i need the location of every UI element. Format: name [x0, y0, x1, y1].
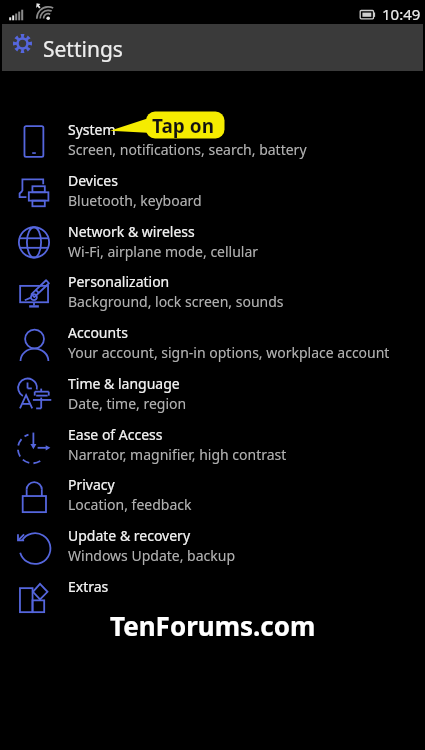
- staticText: Ease of Access: [68, 425, 163, 444]
- button[interactable]: Accounts: [0, 324, 425, 375]
- staticText: Accounts: [68, 323, 128, 342]
- button[interactable]: Network & wireless: [0, 223, 425, 274]
- staticText: Location, feedback: [68, 495, 192, 514]
- staticText: Time & language: [68, 374, 180, 393]
- button[interactable]: Devices: [0, 172, 425, 223]
- staticText: Date, time, region: [68, 394, 187, 413]
- button[interactable]: Ease of Access: [0, 426, 425, 477]
- staticText: Personalization: [68, 272, 170, 291]
- staticText: Bluetooth, keyboard: [68, 191, 202, 210]
- staticText: Your account, sign-in options, workplace…: [68, 343, 390, 362]
- button[interactable]: Update & recovery: [0, 527, 425, 578]
- staticText: Narrator, magnifier, high contrast: [68, 445, 287, 464]
- staticText: Privacy: [68, 475, 115, 494]
- staticText: Windows Update, backup: [68, 546, 236, 565]
- staticText: Update & recovery: [68, 526, 191, 545]
- button[interactable]: Extras: [0, 578, 425, 629]
- button[interactable]: Personalization: [0, 273, 425, 324]
- staticText: Screen, notifications, search, battery: [68, 140, 307, 159]
- button[interactable]: System: [0, 121, 425, 172]
- staticText: Wi-Fi, airplane mode, cellular: [68, 242, 259, 261]
- staticText: Background, lock screen, sounds: [68, 292, 284, 311]
- staticText: Settings: [43, 35, 123, 64]
- staticText: Extras: [68, 577, 109, 596]
- button[interactable]: Privacy: [0, 476, 425, 527]
- staticText: Devices: [68, 171, 118, 190]
- staticText: Network & wireless: [68, 222, 195, 241]
- staticText: TenForums.com: [110, 608, 316, 643]
- staticText: System: [68, 120, 116, 139]
- button[interactable]: Time & language: [0, 375, 425, 426]
- staticText: 10:49: [382, 4, 421, 24]
- staticText: Tap on: [152, 113, 214, 139]
